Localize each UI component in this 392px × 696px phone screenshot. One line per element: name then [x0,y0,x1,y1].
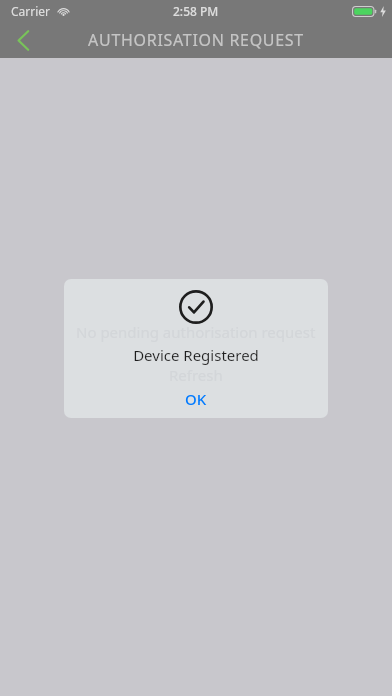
staticText: Refresh [169,365,223,385]
staticText: AUTHORISATION REQUEST [88,29,304,51]
button[interactable]: OK [159,385,233,413]
staticText: No pending authorisation request [76,322,316,342]
staticText: Carrier [11,3,51,19]
staticText: 2:58 PM [173,3,219,19]
button[interactable]: Back [0,22,46,58]
staticText: Device Registered [133,345,259,365]
staticText: OK [185,389,207,409]
